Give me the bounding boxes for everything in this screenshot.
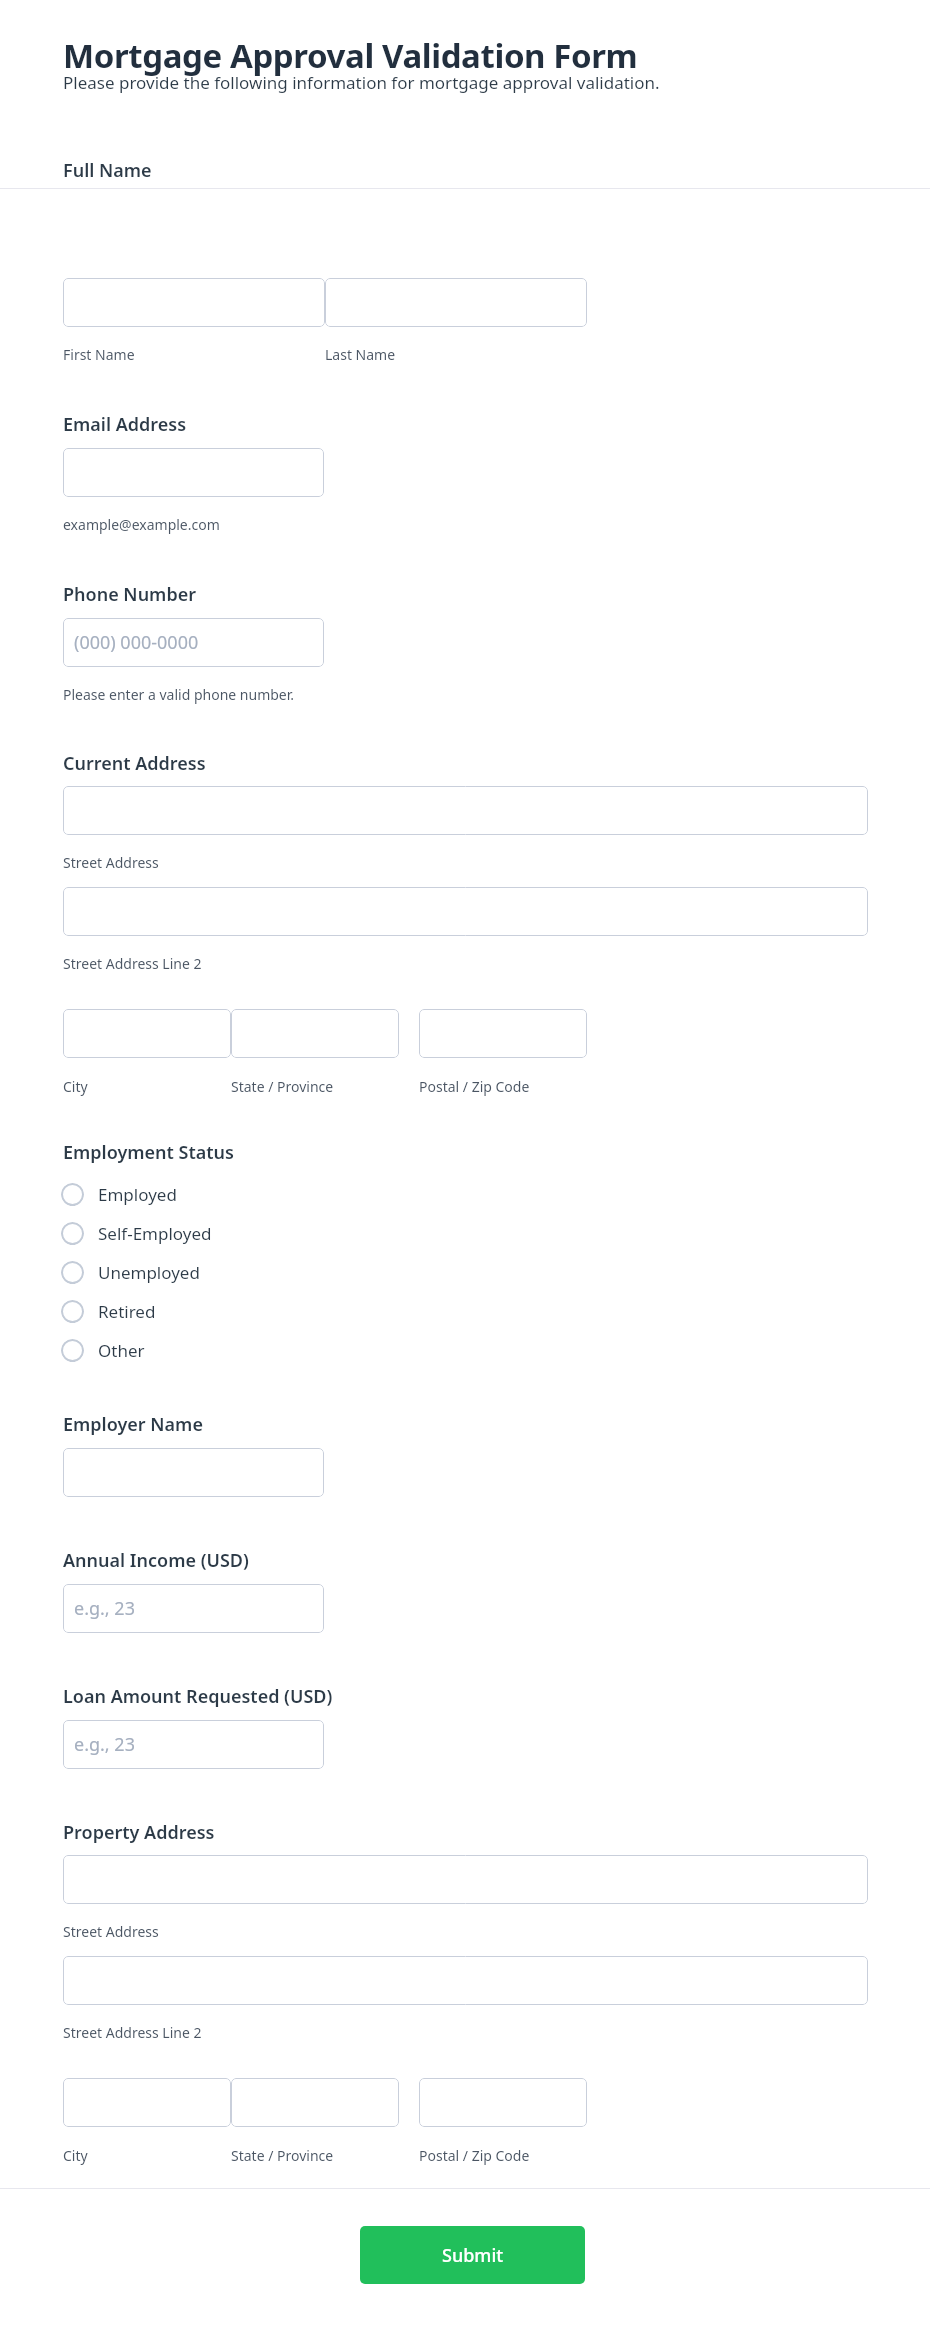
button[interactable]: Retired [61,1295,156,1327]
staticText: Last Name [325,345,396,364]
staticText: Mortgage Approval Validation Form [63,33,638,78]
staticText: Employment Status [63,1140,234,1165]
button[interactable]: Unemployed [61,1256,200,1288]
button[interactable] [419,1009,587,1058]
staticText: City [63,1077,88,1096]
staticText: Loan Amount Requested (USD) [63,1684,333,1709]
staticText: e.g., 23 [74,1732,135,1757]
button[interactable]: e.g., 23 [63,1584,324,1633]
staticText: State / Province [231,1077,334,1096]
staticText: Property Address [63,1820,215,1845]
staticText: Street Address [63,1922,159,1941]
button[interactable] [63,887,868,936]
button[interactable] [63,1448,324,1497]
staticText: Employed [98,1183,177,1206]
staticText: Street Address Line 2 [63,2023,202,2042]
staticText: Please enter a valid phone number. [63,685,295,704]
staticText: Self-Employed [98,1222,212,1245]
staticText: First Name [63,345,135,364]
button[interactable]: Other [61,1334,145,1366]
button[interactable]: e.g., 23 [63,1720,324,1769]
staticText: Submit [442,2243,504,2268]
button[interactable] [63,786,868,835]
button[interactable] [63,1009,231,1058]
staticText: (000) 000-0000 [74,630,199,655]
button[interactable] [63,278,325,327]
staticText: City [63,2146,88,2165]
button[interactable] [419,2078,587,2127]
button[interactable] [231,2078,399,2127]
staticText: State / Province [231,2146,334,2165]
button[interactable] [63,1956,868,2005]
staticText: example@example.com [63,515,220,534]
staticText: Street Address Line 2 [63,954,202,973]
button[interactable] [63,1855,868,1904]
button[interactable]: Self-Employed [61,1217,212,1249]
button[interactable]: (000) 000-0000 [63,618,324,667]
staticText: Annual Income (USD) [63,1548,249,1573]
button[interactable] [63,448,324,497]
staticText: Please provide the following information… [63,71,660,94]
button[interactable] [63,2078,231,2127]
staticText: Phone Number [63,582,197,607]
button[interactable]: Employed [61,1178,177,1210]
staticText: e.g., 23 [74,1596,135,1621]
button[interactable] [231,1009,399,1058]
staticText: Employer Name [63,1412,203,1437]
staticText: Unemployed [98,1261,200,1284]
staticText: Full Name [63,158,152,183]
staticText: Current Address [63,751,206,776]
staticText: Email Address [63,412,187,437]
staticText: Postal / Zip Code [419,2146,530,2165]
button[interactable]: Submit [360,2226,585,2284]
staticText: Postal / Zip Code [419,1077,530,1096]
staticText: Street Address [63,853,159,872]
staticText: Retired [98,1300,156,1323]
button[interactable] [325,278,587,327]
staticText: Other [98,1339,145,1362]
